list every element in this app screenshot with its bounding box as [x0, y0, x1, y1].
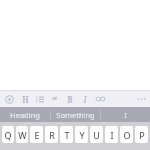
button[interactable]: Heading [0, 107, 50, 122]
button[interactable]: Italic [79, 91, 91, 107]
staticText: I [83, 94, 87, 105]
button[interactable]: I [105, 126, 118, 143]
button[interactable]: O [120, 126, 133, 143]
staticText: P [139, 129, 145, 141]
staticText: Y [79, 129, 85, 141]
staticText: B [67, 94, 73, 105]
button[interactable]: Heading style [19, 91, 31, 107]
button[interactable]: Insert link [94, 91, 106, 107]
button[interactable]: W [16, 126, 28, 143]
staticText: W [18, 129, 27, 141]
button[interactable]: P [135, 126, 148, 143]
button[interactable]: E [30, 126, 43, 143]
button[interactable]: I [101, 107, 150, 122]
button[interactable]: Y [75, 126, 88, 143]
staticText: I [124, 110, 127, 120]
button[interactable]: Something [51, 107, 100, 122]
button[interactable]: R [45, 126, 58, 143]
staticText: T [64, 129, 70, 141]
button[interactable]: U [90, 126, 103, 143]
staticText: I [110, 129, 114, 141]
button[interactable]: T [60, 126, 73, 143]
staticText: Q [4, 129, 12, 141]
staticText: Heading [10, 110, 40, 120]
staticText: U [93, 129, 100, 141]
staticText: R [49, 129, 55, 141]
staticText: “ [52, 92, 58, 107]
staticText: O [123, 129, 131, 141]
button[interactable]: Block quote [49, 91, 61, 107]
staticText: H [22, 94, 29, 105]
button[interactable]: Bulleted list [34, 91, 46, 107]
button[interactable]: Q [2, 126, 14, 143]
staticText: Something [56, 110, 95, 120]
button[interactable]: Bold [64, 91, 76, 107]
button[interactable]: Insert [3, 91, 15, 107]
staticText: E [34, 129, 40, 141]
button[interactable]: More options [135, 91, 147, 107]
